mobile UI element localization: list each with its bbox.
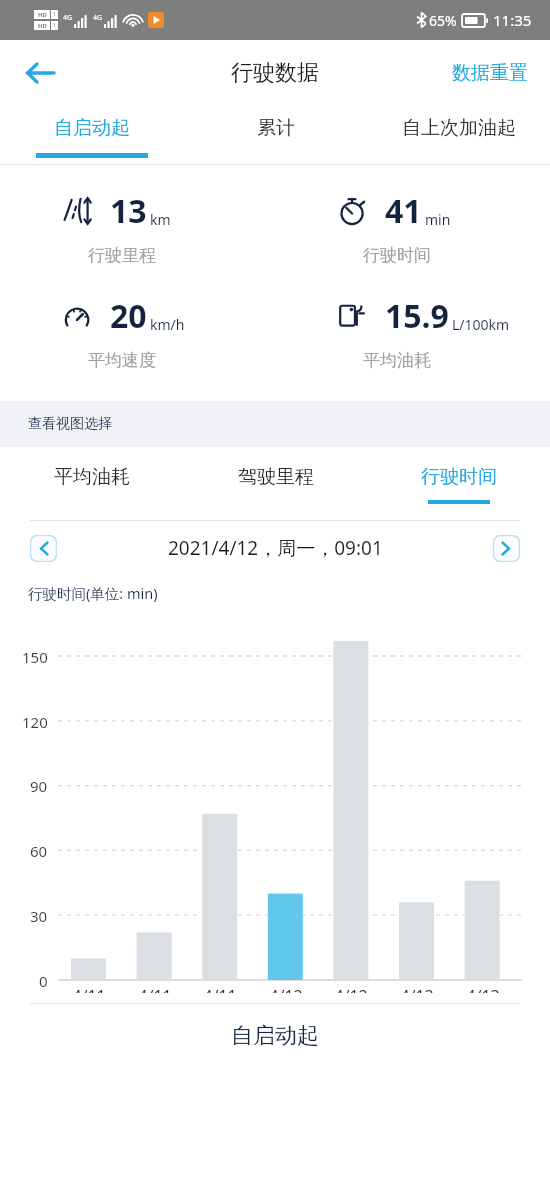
staticText: 4/12 bbox=[334, 985, 368, 993]
staticText: 1 bbox=[53, 11, 56, 18]
staticText: 150 bbox=[22, 647, 48, 667]
button[interactable]: 平均油耗 bbox=[0, 447, 184, 521]
staticText: HD bbox=[38, 22, 47, 30]
staticText: L/100km bbox=[452, 315, 510, 334]
staticText: 自启动起 bbox=[0, 1022, 550, 1050]
button[interactable]: 行驶时间 bbox=[367, 447, 550, 521]
staticText: 13 bbox=[110, 189, 147, 233]
staticText: 平均油耗 bbox=[363, 350, 431, 371]
staticText: 行驶时间 bbox=[363, 245, 431, 266]
staticText: min bbox=[425, 210, 451, 229]
staticText: 4/13 bbox=[466, 985, 500, 993]
staticText: 1 bbox=[53, 22, 56, 29]
staticText: km/h bbox=[150, 315, 185, 334]
button[interactable]: Next bbox=[493, 535, 520, 562]
staticText: 4/11 bbox=[138, 985, 172, 993]
staticText: 20 bbox=[110, 294, 147, 338]
button[interactable]: 13 bbox=[0, 189, 275, 266]
staticText: 30 bbox=[30, 906, 48, 926]
staticText: km bbox=[150, 210, 171, 229]
staticText: 累计 bbox=[257, 116, 295, 140]
staticText: 自上次加油起 bbox=[402, 116, 516, 140]
staticText: 行驶时间 bbox=[421, 465, 497, 489]
staticText: 60 bbox=[30, 841, 48, 861]
staticText: 查看视图选择 bbox=[28, 415, 112, 433]
staticText: 平均油耗 bbox=[54, 465, 130, 489]
staticText: 15.9 bbox=[385, 294, 449, 338]
staticText: 4/11 bbox=[203, 985, 237, 993]
staticText: 11:35 bbox=[493, 10, 532, 30]
staticText: 驾驶里程 bbox=[238, 465, 314, 489]
staticText: 4/13 bbox=[400, 985, 434, 993]
button[interactable]: 41 bbox=[275, 189, 550, 266]
staticText: 90 bbox=[30, 776, 48, 796]
staticText: 平均速度 bbox=[88, 350, 156, 371]
button[interactable]: 20 bbox=[0, 294, 275, 371]
button[interactable]: 自上次加油起 bbox=[367, 106, 550, 164]
staticText: 120 bbox=[22, 712, 48, 732]
staticText: 行驶里程 bbox=[88, 245, 156, 266]
button[interactable]: 驾驶里程 bbox=[184, 447, 367, 521]
staticText: 4G bbox=[93, 13, 103, 23]
button[interactable]: 累计 bbox=[184, 106, 367, 164]
staticText: 41 bbox=[385, 189, 422, 233]
button[interactable]: Previous bbox=[30, 535, 57, 562]
button[interactable]: Back bbox=[14, 47, 66, 99]
staticText: HD bbox=[38, 11, 47, 19]
staticText: 0 bbox=[39, 971, 48, 991]
staticText: 4/11 bbox=[72, 985, 106, 993]
staticText: 4/12 bbox=[269, 985, 303, 993]
staticText: 行驶数据 bbox=[231, 59, 319, 87]
staticText: 2021/4/12，周一，09:01 bbox=[168, 535, 383, 561]
staticText: 行驶时间(单位: min) bbox=[28, 583, 158, 603]
staticText: 数据重置 bbox=[452, 61, 528, 85]
button[interactable]: 自启动起 bbox=[0, 106, 184, 164]
button[interactable]: 15.9 bbox=[275, 294, 550, 371]
staticText: 4G bbox=[63, 13, 73, 23]
staticText: 65% bbox=[429, 11, 457, 30]
button[interactable]: 数据重置 bbox=[448, 53, 532, 93]
staticText: 自启动起 bbox=[54, 116, 130, 140]
